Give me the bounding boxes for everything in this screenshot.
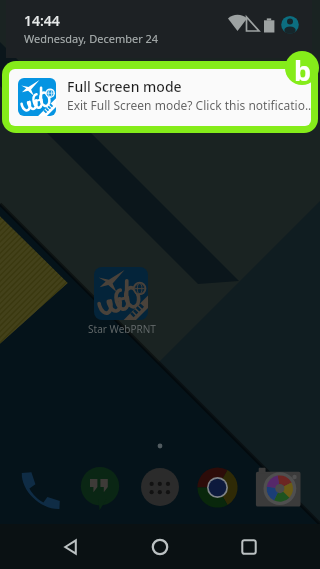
button[interactable]: Home — [148, 535, 172, 559]
staticText: b — [294, 52, 312, 85]
button[interactable]: App badge — [285, 51, 319, 85]
button[interactable]: Camera — [255, 467, 301, 507]
button[interactable]: Apps — [141, 468, 179, 506]
staticText: Full Screen mode — [67, 77, 182, 96]
staticText: Wednesday, December 24 — [24, 31, 159, 46]
button[interactable] — [94, 267, 148, 320]
button[interactable]: Chrome — [197, 467, 238, 508]
staticText: 14:44 — [24, 11, 60, 30]
button[interactable]: Recents — [237, 535, 261, 559]
staticText: Exit Full Screen mode? Click this notifi… — [67, 97, 311, 113]
button[interactable]: Hangouts — [80, 467, 120, 507]
button[interactable]: Back — [59, 535, 83, 559]
staticText: Star WebPRNT — [87, 322, 157, 336]
button[interactable]: Full Screen mode — [2, 61, 318, 133]
button[interactable]: Phone — [21, 469, 61, 509]
